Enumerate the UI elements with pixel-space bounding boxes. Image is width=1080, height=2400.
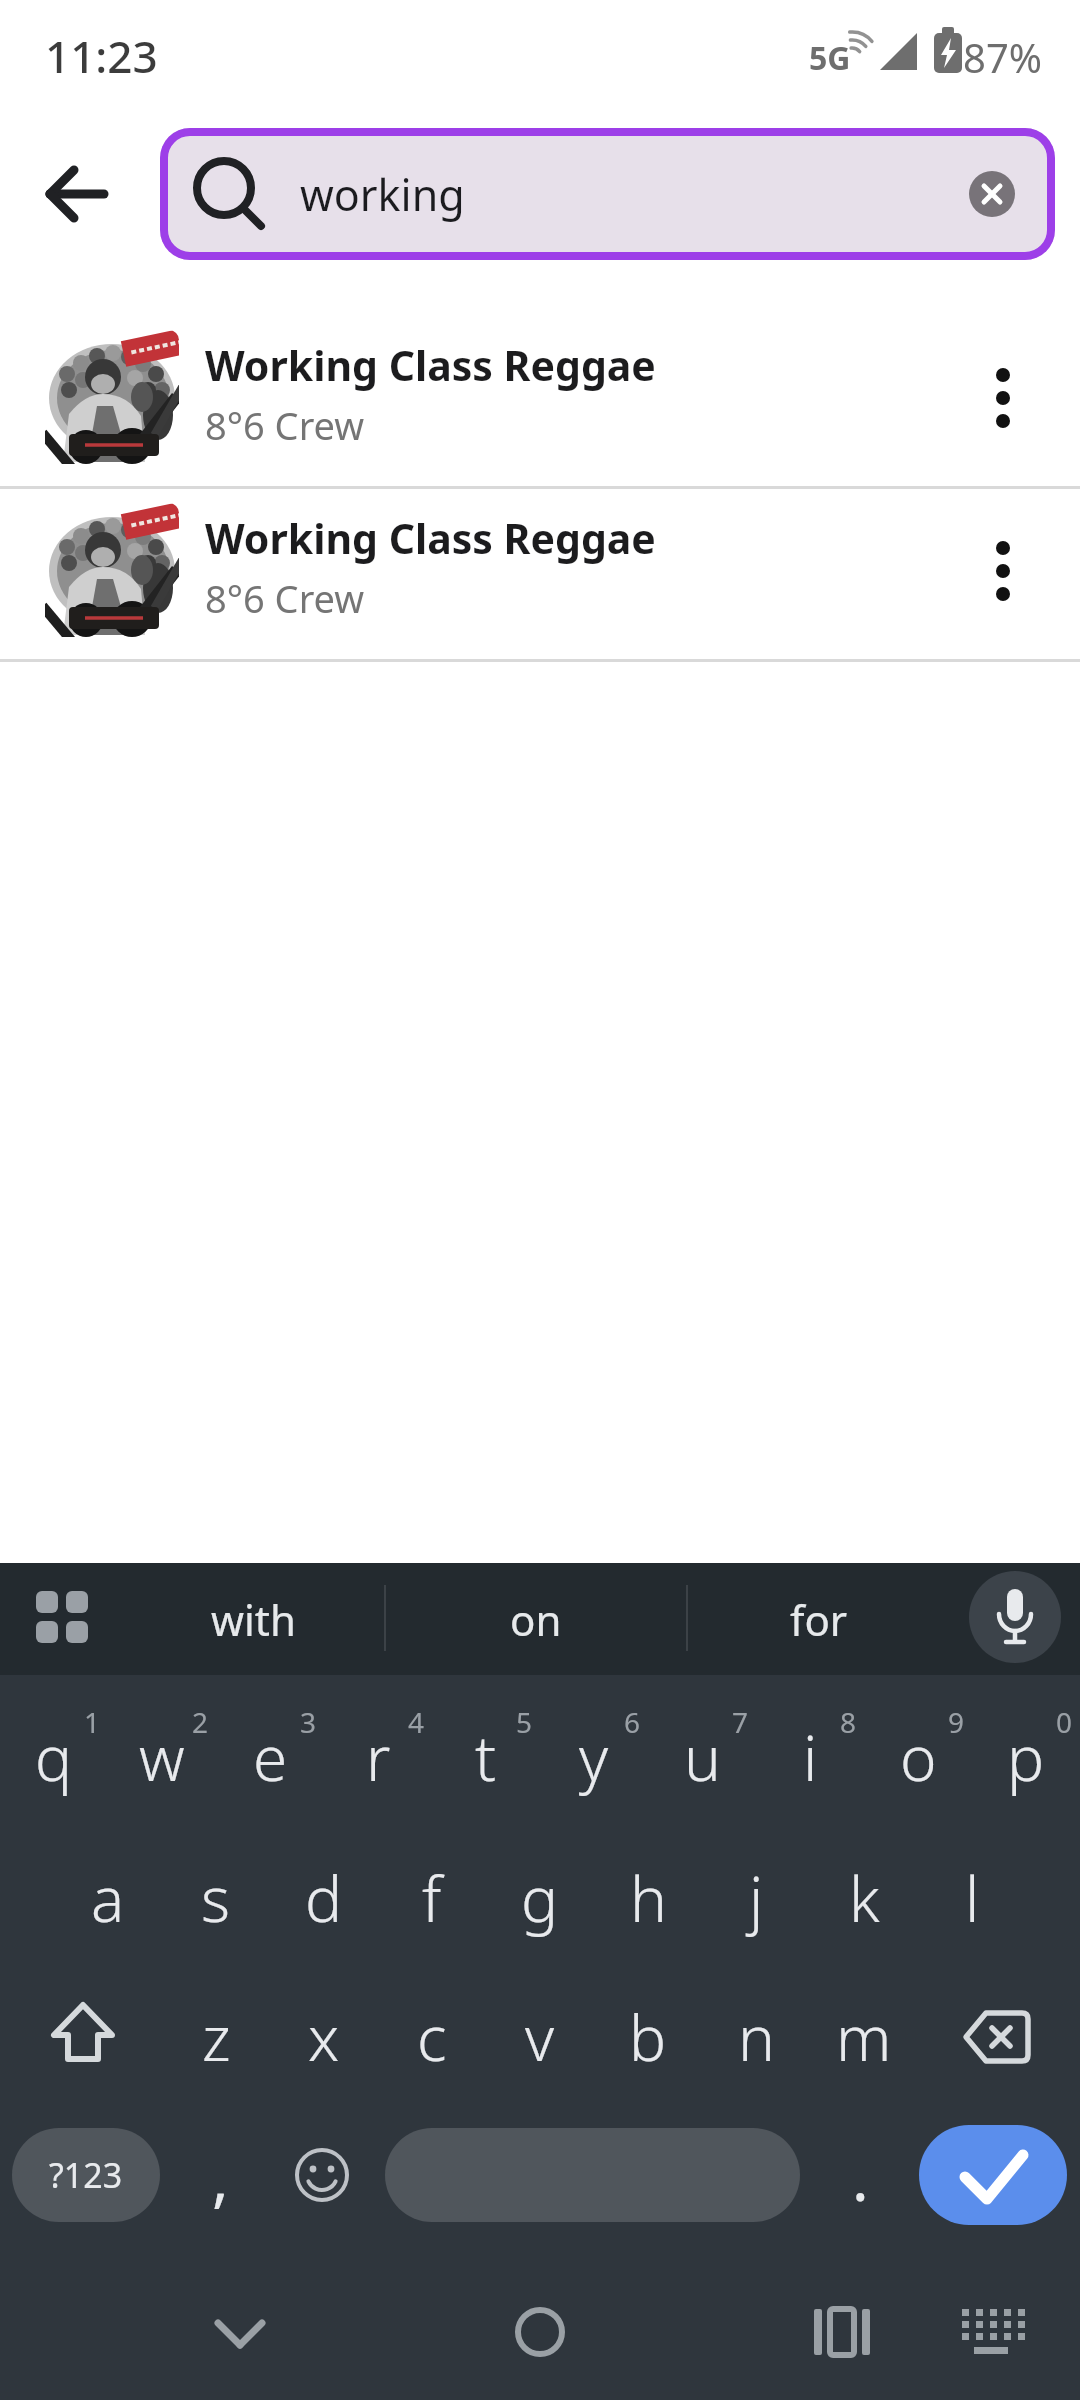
- staticText: f: [422, 1856, 442, 1940]
- staticText: 8: [840, 1703, 857, 1741]
- staticText: on: [510, 1591, 562, 1648]
- button[interactable]: t: [434, 1695, 538, 1819]
- staticText: d: [305, 1856, 343, 1940]
- staticText: Working Class Reggae: [205, 337, 656, 393]
- button[interactable]: p: [974, 1695, 1078, 1819]
- staticText: u: [684, 1715, 721, 1799]
- staticText: q: [35, 1715, 73, 1799]
- button[interactable]: j: [704, 1836, 808, 1960]
- staticText: z: [202, 1995, 231, 2079]
- staticText: ?123: [49, 2152, 123, 2198]
- staticText: h: [630, 1856, 667, 1940]
- button[interactable]: u: [650, 1695, 754, 1819]
- staticText: 8°6 Crew: [205, 572, 365, 622]
- button[interactable]: w: [110, 1695, 214, 1819]
- button[interactable]: a: [56, 1836, 160, 1960]
- staticText: r: [366, 1715, 391, 1799]
- button[interactable]: f: [380, 1836, 484, 1960]
- staticText: g: [521, 1856, 559, 1940]
- staticText: 8°6 Crew: [205, 399, 365, 449]
- staticText: p: [1007, 1715, 1045, 1799]
- button[interactable]: v: [488, 1975, 592, 2099]
- staticText: v: [525, 1995, 555, 2079]
- button[interactable]: o: [866, 1695, 970, 1819]
- staticText: m: [836, 1995, 892, 2079]
- staticText: e: [253, 1715, 288, 1799]
- staticText: l: [965, 1856, 980, 1940]
- staticText: working: [300, 165, 465, 224]
- staticText: c: [417, 1995, 447, 2079]
- staticText: t: [475, 1715, 497, 1799]
- button[interactable]: [20, 1985, 146, 2089]
- staticText: 11:23: [45, 26, 158, 78]
- button[interactable]: ,: [180, 2130, 260, 2224]
- button[interactable]: [955, 350, 1051, 450]
- staticText: n: [738, 1995, 775, 2079]
- button[interactable]: [192, 2295, 288, 2371]
- staticText: 6: [624, 1703, 641, 1741]
- button[interactable]: [30, 1587, 100, 1651]
- button[interactable]: l: [920, 1836, 1024, 1960]
- button[interactable]: [34, 150, 122, 238]
- button[interactable]: [942, 2295, 1038, 2371]
- staticText: x: [308, 1995, 340, 2079]
- button[interactable]: b: [596, 1975, 700, 2099]
- button[interactable]: i: [758, 1695, 862, 1819]
- button[interactable]: k: [812, 1836, 916, 1960]
- button[interactable]: [286, 2139, 358, 2211]
- staticText: 1: [84, 1703, 101, 1741]
- staticText: b: [629, 1995, 667, 2079]
- button[interactable]: Working Class Reggae: [0, 314, 1080, 486]
- button[interactable]: [790, 2295, 886, 2371]
- staticText: Working Class Reggae: [205, 510, 656, 566]
- button[interactable]: m: [812, 1975, 916, 2099]
- button[interactable]: q: [2, 1695, 106, 1819]
- staticText: with: [211, 1591, 296, 1648]
- button[interactable]: for: [726, 1575, 912, 1663]
- staticText: k: [849, 1856, 880, 1940]
- staticText: 0: [1056, 1703, 1073, 1741]
- staticText: w: [139, 1715, 185, 1799]
- staticText: 9: [948, 1703, 965, 1741]
- button[interactable]: [919, 2125, 1067, 2225]
- staticText: .: [852, 2135, 869, 2219]
- staticText: 7: [732, 1703, 749, 1741]
- button[interactable]: z: [164, 1975, 268, 2099]
- staticText: for: [790, 1591, 848, 1648]
- staticText: 5G: [809, 36, 851, 76]
- button[interactable]: s: [164, 1836, 268, 1960]
- button[interactable]: [385, 2128, 800, 2222]
- button[interactable]: Working Class Reggae: [0, 487, 1080, 659]
- button[interactable]: n: [704, 1975, 808, 2099]
- button[interactable]: with: [142, 1575, 364, 1663]
- button[interactable]: ?123: [12, 2128, 160, 2222]
- staticText: 3: [300, 1703, 317, 1741]
- button[interactable]: e: [218, 1695, 322, 1819]
- button[interactable]: [930, 1985, 1056, 2089]
- button[interactable]: working: [160, 128, 1055, 260]
- button[interactable]: r: [326, 1695, 430, 1819]
- button[interactable]: g: [488, 1836, 592, 1960]
- button[interactable]: on: [430, 1575, 642, 1663]
- button[interactable]: h: [596, 1836, 700, 1960]
- staticText: 4: [408, 1703, 425, 1741]
- staticText: ,: [212, 2135, 229, 2219]
- button[interactable]: [969, 1571, 1061, 1663]
- staticText: 5: [516, 1703, 533, 1741]
- button[interactable]: [955, 523, 1051, 623]
- button[interactable]: y: [542, 1695, 646, 1819]
- staticText: a: [91, 1856, 125, 1940]
- button[interactable]: c: [380, 1975, 484, 2099]
- staticText: y: [579, 1715, 609, 1799]
- staticText: i: [803, 1715, 818, 1799]
- button[interactable]: .: [820, 2130, 900, 2224]
- staticText: 87%: [963, 30, 1042, 76]
- staticText: j: [749, 1856, 764, 1940]
- staticText: 2: [192, 1703, 209, 1741]
- button[interactable]: x: [272, 1975, 376, 2099]
- staticText: s: [201, 1856, 231, 1940]
- button[interactable]: d: [272, 1836, 376, 1960]
- button[interactable]: [492, 2295, 588, 2371]
- staticText: o: [900, 1715, 937, 1799]
